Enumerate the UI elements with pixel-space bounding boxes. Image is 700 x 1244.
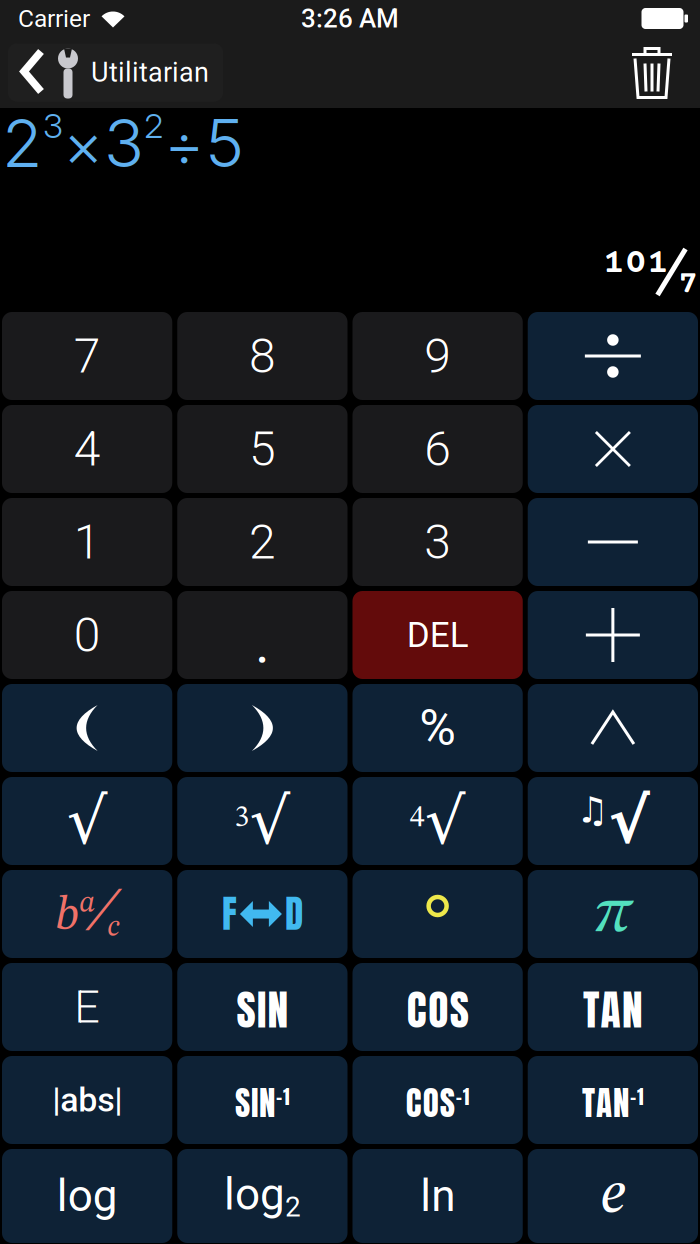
staticText: 9 <box>424 328 451 384</box>
button[interactable]: Fraction <box>2 870 172 958</box>
button[interactable]: ln <box>352 1149 523 1243</box>
button[interactable]: 8 <box>177 312 347 400</box>
button[interactable]: SIN <box>177 963 347 1051</box>
button[interactable]: |abs| <box>2 1056 172 1144</box>
staticText: DEL <box>407 614 469 655</box>
button[interactable]: Divide <box>528 312 698 400</box>
button[interactable]: % <box>352 684 523 772</box>
button[interactable]: SIN-1 <box>177 1056 347 1144</box>
staticText: . <box>255 610 270 676</box>
staticText: 4 <box>74 421 101 477</box>
staticText: 7 <box>678 266 698 304</box>
button[interactable]: 1 <box>2 498 172 586</box>
button[interactable]: Clear history <box>632 45 700 99</box>
button[interactable]: TAN <box>528 963 698 1051</box>
button[interactable]: 7 <box>2 312 172 400</box>
button[interactable]: COS <box>352 963 523 1051</box>
button[interactable]: 9 <box>352 312 523 400</box>
staticText: SIN <box>236 979 288 1041</box>
staticText: ba⁄c <box>55 885 119 943</box>
staticText: 8 <box>249 328 276 384</box>
staticText: 4√ <box>410 785 466 857</box>
staticText: e <box>600 1165 625 1226</box>
staticText: √ <box>67 784 108 858</box>
staticText: SIN-1 <box>235 1079 290 1127</box>
staticText: 3√ <box>234 785 290 857</box>
button[interactable]: √ <box>2 777 172 865</box>
button[interactable]: Degrees <box>352 870 523 958</box>
button[interactable]: Subtract <box>528 498 698 586</box>
staticText: 7 <box>74 328 101 384</box>
button[interactable]: Back <box>8 43 223 101</box>
staticText: ln <box>420 1170 455 1222</box>
staticText: TAN <box>583 979 643 1041</box>
button[interactable]: 4 <box>2 405 172 493</box>
button[interactable]: Open parenthesis <box>2 684 172 772</box>
staticText: 6 <box>424 421 451 477</box>
staticText: 5 <box>249 421 276 477</box>
button[interactable]: Power <box>528 684 698 772</box>
staticText: log2 <box>224 1169 301 1223</box>
button[interactable]: 4√ <box>352 777 523 865</box>
staticText: COS <box>407 979 469 1041</box>
button[interactable]: Pi <box>528 870 698 958</box>
staticText: E <box>74 981 100 1033</box>
staticText: |abs| <box>52 1080 122 1120</box>
button[interactable]: 5 <box>177 405 347 493</box>
staticText: 101 <box>603 244 669 284</box>
button[interactable]: Add <box>528 591 698 679</box>
staticText: 1 <box>74 514 101 570</box>
button[interactable]: 6 <box>352 405 523 493</box>
staticText: TAN-1 <box>582 1079 644 1127</box>
button[interactable]: e <box>528 1149 698 1243</box>
staticText: 3:26 AM <box>301 3 399 34</box>
button[interactable]: 0 <box>2 591 172 679</box>
staticText: Carrier <box>18 4 90 33</box>
button[interactable]: Close parenthesis <box>177 684 347 772</box>
button[interactable]: ♫√ <box>528 777 698 865</box>
button[interactable]: log2 <box>177 1149 347 1243</box>
staticText: 2 <box>249 514 276 570</box>
button[interactable]: 3 <box>352 498 523 586</box>
staticText: F <box>222 886 237 942</box>
staticText: ♫√ <box>576 786 649 856</box>
staticText: π <box>594 882 632 946</box>
button[interactable]: TAN-1 <box>528 1056 698 1144</box>
staticText: D <box>285 886 303 942</box>
button[interactable]: 2 <box>177 498 347 586</box>
button[interactable]: Fraction to decimal <box>177 870 347 958</box>
button[interactable]: E <box>2 963 172 1051</box>
staticText: 0 <box>74 607 101 663</box>
button[interactable]: COS-1 <box>352 1056 523 1144</box>
staticText: Utilitarian <box>91 57 209 88</box>
staticText: 23×32÷5 <box>2 104 244 182</box>
staticText: log <box>57 1170 118 1222</box>
button[interactable]: . <box>177 591 347 679</box>
staticText: 3 <box>424 514 451 570</box>
button[interactable]: 3√ <box>177 777 347 865</box>
button[interactable]: log <box>2 1149 172 1243</box>
staticText: COS-1 <box>406 1079 470 1127</box>
staticText: % <box>419 699 456 757</box>
button[interactable]: Multiply <box>528 405 698 493</box>
button[interactable]: DEL <box>352 591 523 679</box>
